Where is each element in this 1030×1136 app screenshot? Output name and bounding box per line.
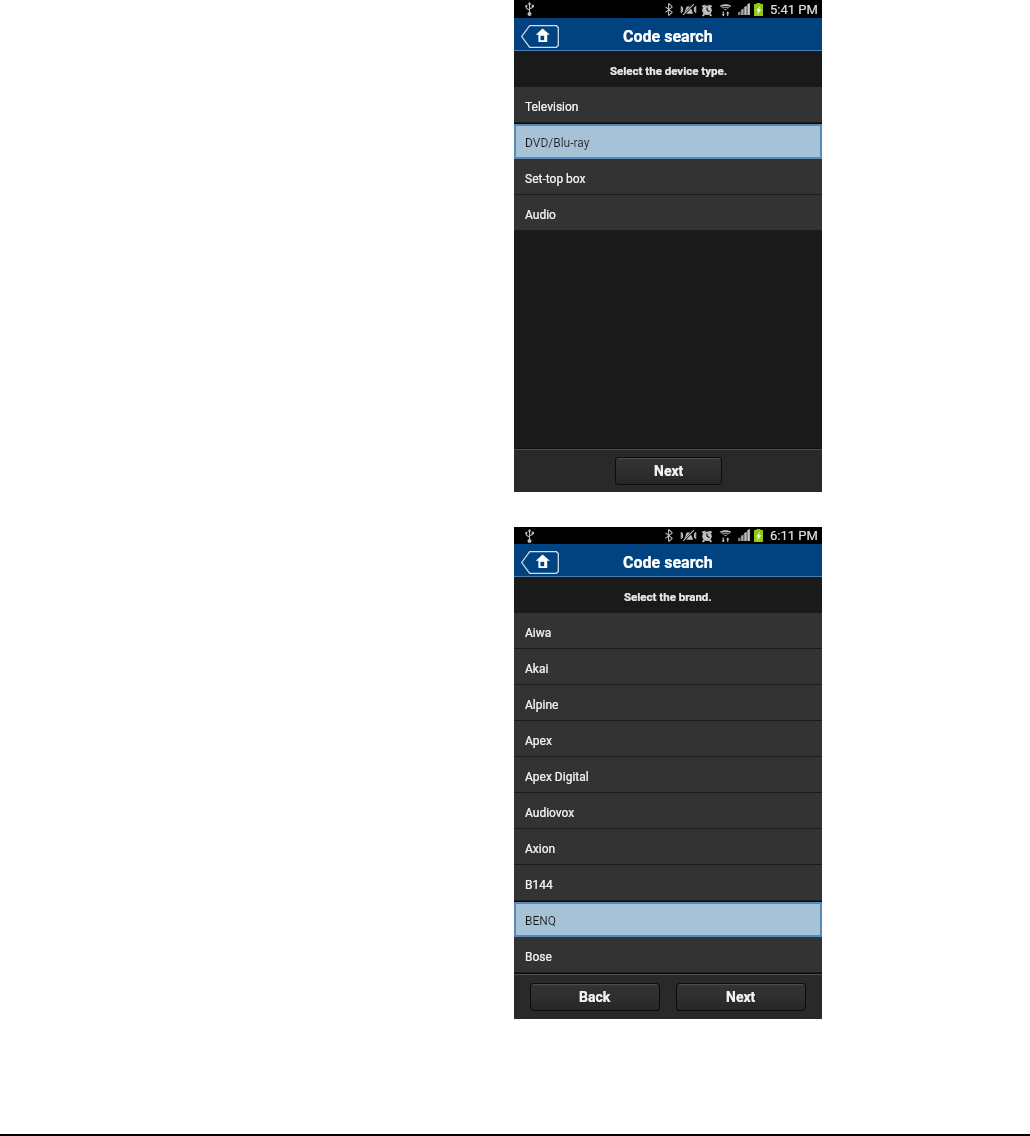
button[interactable]: Apex Digital [514,757,822,793]
staticText: Aiwa [525,626,552,640]
staticText: Bose [525,950,552,964]
button[interactable]: Bose [514,937,822,973]
staticText: Alpine [525,698,559,712]
button[interactable]: BENQ [516,904,820,935]
button[interactable]: Next [677,984,805,1010]
staticText: Select the device type. [610,64,727,77]
button[interactable]: Television [514,87,822,123]
button[interactable]: DVD/Blu-ray [516,126,820,157]
button[interactable]: Audiovox [514,793,822,829]
staticText: Television [525,100,579,114]
button[interactable]: Set-top box [514,159,822,195]
button[interactable]: B144 [514,865,822,901]
button[interactable]: Audio [514,195,822,231]
staticText: Audio [525,208,556,222]
staticText: Audiovox [525,806,575,820]
button[interactable]: Alpine [514,685,822,721]
staticText: Next [726,989,756,1005]
staticText: 6:11 PM [770,528,818,543]
button[interactable]: Home [521,551,559,574]
button[interactable]: Akai [514,649,822,685]
button[interactable]: Back [531,984,659,1010]
button[interactable]: Apex [514,721,822,757]
staticText: Code search [623,553,713,572]
button[interactable]: Aiwa [514,613,822,649]
staticText: Select the brand. [624,590,712,603]
staticText: B144 [525,878,553,892]
staticText: Code search [623,27,713,46]
staticText: Apex [525,734,552,748]
button[interactable]: Home [521,25,559,48]
staticText: Akai [525,662,549,676]
staticText: Next [654,463,684,479]
button[interactable]: Axion [514,829,822,865]
button[interactable]: Next [616,458,721,484]
staticText: 5:41 PM [770,2,818,17]
staticText: DVD/Blu-ray [525,136,590,150]
staticText: Apex Digital [525,770,589,784]
staticText: Set-top box [525,172,586,186]
staticText: BENQ [525,914,557,928]
staticText: Axion [525,842,556,856]
staticText: Back [579,989,611,1005]
